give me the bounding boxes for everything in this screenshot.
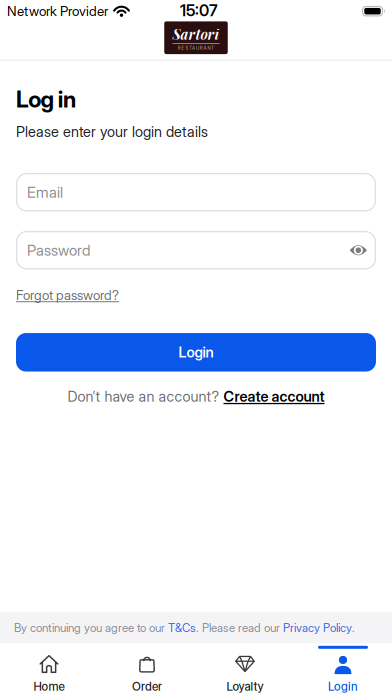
button[interactable]: Email (16, 173, 376, 211)
staticText: Loyalty (226, 679, 263, 694)
staticText: Privacy Policy (283, 621, 352, 635)
staticText: Login (328, 679, 358, 694)
staticText: Please enter your login details (16, 123, 208, 140)
staticText: Sartori (172, 25, 219, 43)
staticText: . (352, 621, 355, 635)
staticText: Password (27, 241, 90, 259)
button[interactable]: Create account (223, 388, 324, 405)
button[interactable]: Show password (350, 245, 376, 256)
button[interactable]: Forgot password? (16, 287, 119, 303)
button[interactable]: Order (98, 643, 196, 696)
button[interactable]: Login (294, 643, 392, 696)
staticText: Don’t have an account? (67, 388, 223, 405)
staticText: Order (132, 679, 162, 694)
button[interactable]: Password (16, 231, 376, 269)
staticText: Login (178, 344, 213, 361)
staticText: Forgot password? (16, 287, 119, 303)
staticText: Network Provider (7, 3, 108, 19)
staticText: 15:07 (180, 1, 218, 20)
staticText: Email (27, 183, 63, 201)
button[interactable]: Privacy Policy (283, 621, 352, 635)
staticText: Log in (16, 86, 76, 113)
button[interactable]: Loyalty (196, 643, 294, 696)
button[interactable]: Login (16, 333, 376, 371)
button[interactable]: Home (0, 643, 98, 696)
staticText: Create account (223, 388, 324, 405)
staticText: Home (33, 679, 64, 694)
staticText: T&Cs (168, 621, 196, 635)
button[interactable]: T&Cs (168, 621, 196, 635)
staticText: By continuing you agree to our (14, 621, 168, 635)
staticText: . Please read our (196, 621, 283, 635)
staticText: RESTAURANT (178, 45, 214, 51)
